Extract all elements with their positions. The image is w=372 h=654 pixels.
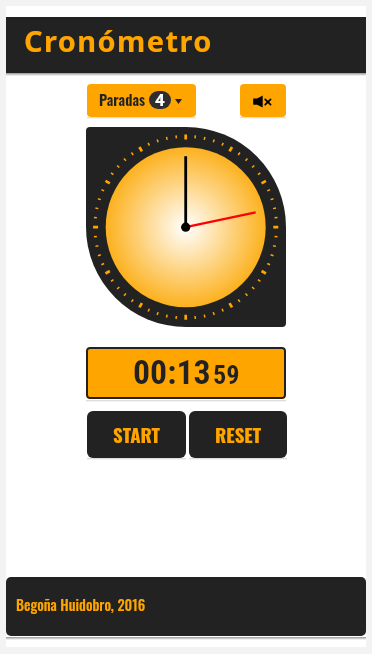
staticText: 59 [213,360,240,391]
staticText: 00:13 [133,353,211,393]
staticText: RESET [215,421,262,449]
staticText: 4 [155,90,165,110]
staticText: Cronómetro [24,21,213,60]
staticText: Begoña Huidobro, 2016 [16,594,146,615]
button[interactable]: START [87,411,186,458]
button[interactable]: 00:13 [86,347,286,399]
staticText: START [113,421,160,449]
staticText: Paradas [99,89,146,110]
button[interactable]: Paradas [87,84,196,117]
button[interactable]: RESET [189,411,287,458]
button[interactable]: Silenciar [240,84,286,117]
